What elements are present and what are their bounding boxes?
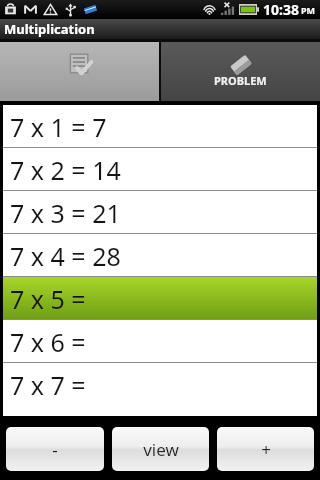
button[interactable]: 7 x 7 = [3,363,317,406]
button[interactable]: LIST [0,42,159,103]
button[interactable]: 7 x 6 = [3,320,317,363]
staticText: LIST [69,71,92,86]
staticText: PROBLEM [214,73,267,88]
button[interactable]: 7 x 5 = [3,277,317,320]
staticText: 7 x 2 = 14 [10,153,121,187]
staticText: - [52,438,58,461]
button[interactable]: - [6,427,104,471]
staticText: 7 x 4 = 28 [10,239,121,273]
button[interactable]: view [112,427,209,471]
staticText: 7 x 6 = [10,325,86,359]
button[interactable]: PROBLEM [161,42,320,103]
staticText: 7 x 7 = [10,368,86,402]
staticText: 7 x 3 = 21 [10,196,121,230]
button[interactable]: + [217,427,314,471]
staticText: view [143,438,179,461]
staticText: 10:38 [263,0,299,19]
button[interactable]: 7 x 3 = 21 [3,191,317,234]
staticText: PM [301,4,316,16]
staticText: 7 x 1 = 7 [10,110,107,144]
staticText: + [261,438,271,461]
staticText: 7 x 5 = [10,282,86,316]
button[interactable]: 7 x 2 = 14 [3,148,317,191]
staticText: Multiplication [4,20,95,38]
button[interactable]: 7 x 4 = 28 [3,234,317,277]
button[interactable]: 7 x 1 = 7 [3,105,317,148]
